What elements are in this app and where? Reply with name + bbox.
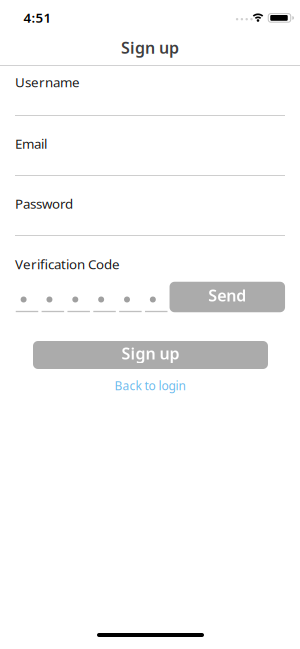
staticText: 4:51 — [23, 9, 51, 26]
staticText: Email — [15, 135, 47, 152]
button[interactable]: Send — [170, 282, 285, 312]
staticText: Username — [15, 73, 80, 91]
staticText: Sign up — [121, 343, 179, 364]
staticText: Send — [208, 285, 246, 306]
staticText: Verification Code — [15, 255, 120, 273]
staticText: Back to login — [114, 377, 185, 393]
button[interactable]: Sign up — [33, 341, 268, 369]
staticText: Password — [15, 195, 73, 212]
staticText: Sign up — [121, 37, 179, 58]
button[interactable]: Back to login — [114, 377, 185, 393]
